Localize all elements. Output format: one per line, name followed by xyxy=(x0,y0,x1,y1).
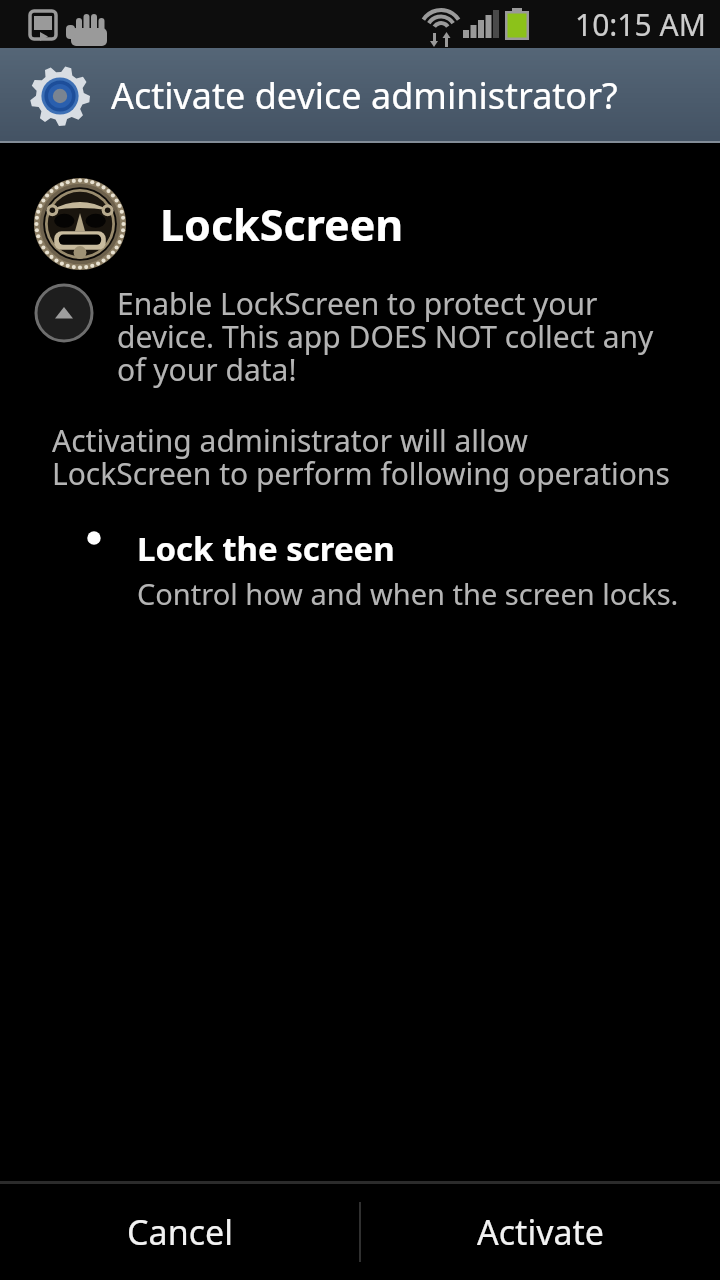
staticText: Cancel xyxy=(127,1209,233,1255)
staticText: Activate xyxy=(477,1209,604,1255)
staticText: Control how and when the screen locks. xyxy=(137,574,679,613)
staticText: Activate device administrator? xyxy=(111,71,618,120)
staticText: 10:15 AM xyxy=(575,4,706,45)
button[interactable]: Cancel xyxy=(0,1184,359,1280)
staticText: Activating administrator will allow Lock… xyxy=(52,420,680,494)
button[interactable]: Activate xyxy=(361,1184,720,1280)
staticText: Enable LockScreen to protect your device… xyxy=(117,283,680,390)
staticText: Lock the screen xyxy=(137,526,395,571)
staticText: LockScreen xyxy=(160,195,404,254)
button[interactable]: Collapse description xyxy=(34,283,94,343)
